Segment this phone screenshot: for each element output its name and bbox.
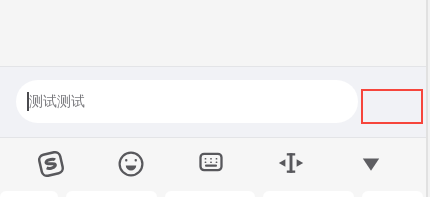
button[interactable]: Move cursor [262, 138, 320, 191]
button[interactable]: Sogou input [22, 138, 80, 191]
button[interactable]: 测试测试 [16, 80, 358, 123]
button[interactable]: Hide keyboard [342, 138, 400, 191]
button[interactable]: Emoji [102, 138, 160, 191]
button[interactable]: Keyboard layout [182, 138, 240, 191]
button[interactable]: Send [362, 90, 422, 123]
staticText: 测试测试 [29, 93, 85, 111]
